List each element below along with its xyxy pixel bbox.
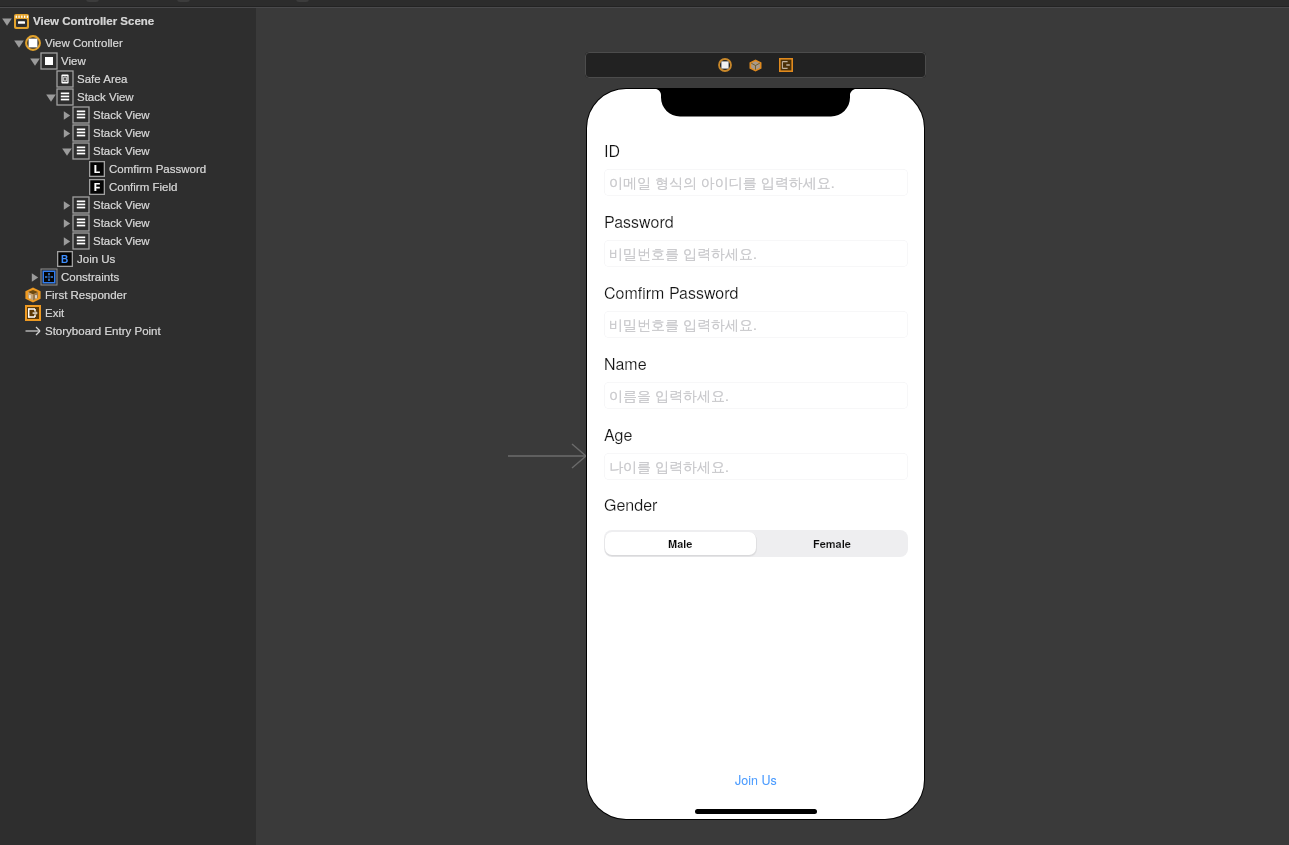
button[interactable]: Stack View	[0, 196, 256, 214]
button[interactable]: Editor options	[177, 0, 190, 2]
button[interactable]: View	[0, 52, 256, 70]
button[interactable]: Navigator	[86, 0, 99, 2]
staticText: ID	[604, 139, 621, 162]
staticText: Stack View	[77, 91, 134, 104]
button[interactable]: 비밀번호를 입력하세요.	[604, 240, 908, 267]
button[interactable]: Inspector	[296, 0, 309, 2]
staticText: F	[94, 182, 101, 193]
staticText: View Controller	[45, 37, 123, 50]
staticText: 비밀번호를 입력하세요.	[609, 314, 757, 334]
staticText: View	[61, 55, 86, 68]
staticText: Name	[604, 352, 647, 375]
staticText: 이메일 형식의 아이디를 입력하세요.	[609, 172, 835, 192]
button[interactable]: Female	[756, 530, 908, 557]
staticText: Male	[668, 536, 693, 552]
staticText: L	[94, 164, 101, 175]
staticText: Gender	[604, 493, 658, 516]
button[interactable]: Male	[605, 532, 756, 555]
button[interactable]: Stack View	[0, 214, 256, 232]
staticText: 비밀번호를 입력하세요.	[609, 243, 757, 263]
staticText: View Controller Scene	[33, 15, 155, 28]
staticText: Stack View	[93, 199, 150, 212]
staticText: B	[61, 254, 69, 265]
staticText: Constraints	[61, 271, 120, 284]
button[interactable]: Stack View	[0, 142, 256, 160]
staticText: Stack View	[93, 217, 150, 230]
button[interactable]: Stack View	[0, 106, 256, 124]
button[interactable]: First Responder	[749, 59, 762, 72]
button[interactable]: 나이를 입력하세요.	[604, 453, 908, 480]
button[interactable]: View Controller Scene	[0, 12, 256, 30]
staticText: Stack View	[93, 109, 150, 122]
staticText: 이름을 입력하세요.	[609, 385, 729, 405]
staticText: Female	[813, 536, 851, 552]
staticText: 나이를 입력하세요.	[609, 456, 729, 476]
staticText: Comfirm Password	[604, 281, 739, 304]
button[interactable]: 이름을 입력하세요.	[604, 382, 908, 409]
staticText: Age	[604, 423, 633, 446]
staticText: Password	[604, 210, 674, 233]
button[interactable]: Constraints	[0, 268, 256, 286]
staticText: Stack View	[93, 235, 150, 248]
button[interactable]: Join Us	[721, 767, 791, 793]
button[interactable]: Exit	[779, 58, 793, 72]
button[interactable]: Stack View	[0, 232, 256, 250]
button[interactable]: 비밀번호를 입력하세요.	[604, 311, 908, 338]
button[interactable]: F	[0, 178, 256, 196]
button[interactable]: B	[0, 250, 256, 268]
button[interactable]: Storyboard Entry Point	[0, 322, 256, 340]
button[interactable]: 이메일 형식의 아이디를 입력하세요.	[604, 169, 908, 196]
staticText: Storyboard Entry Point	[45, 325, 161, 338]
button[interactable]: Safe Area	[0, 70, 256, 88]
staticText: First Responder	[45, 289, 127, 302]
button[interactable]: First Responder	[0, 286, 256, 304]
button[interactable]: L	[0, 160, 256, 178]
staticText: Comfirm Password	[109, 163, 207, 176]
button[interactable]: Stack View	[0, 88, 256, 106]
staticText: Exit	[45, 307, 65, 320]
staticText: Safe Area	[77, 73, 128, 86]
staticText: Confirm Field	[109, 181, 178, 194]
staticText: Stack View	[93, 145, 150, 158]
button[interactable]: Stack View	[0, 124, 256, 142]
staticText: Join Us	[77, 253, 116, 266]
button[interactable]: View Controller	[0, 34, 256, 52]
button[interactable]: Exit	[0, 304, 256, 322]
staticText: Stack View	[93, 127, 150, 140]
staticText: Join Us	[735, 771, 777, 789]
button[interactable]: View Controller	[718, 58, 732, 72]
